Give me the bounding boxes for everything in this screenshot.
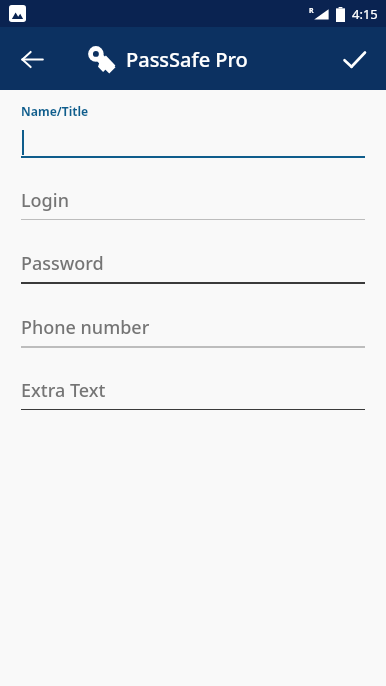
- staticText: Password: [21, 251, 104, 276]
- staticText: Login: [21, 188, 69, 213]
- button[interactable]: Extra Text: [21, 378, 365, 410]
- button[interactable]: Password: [21, 251, 365, 284]
- staticText: Name/Title: [21, 103, 89, 119]
- button[interactable]: Login: [21, 188, 365, 220]
- button[interactable]: Name/Title: [21, 103, 365, 158]
- button[interactable]: Back: [8, 35, 56, 83]
- staticText: PassSafe Pro: [126, 46, 248, 73]
- button[interactable]: Phone number: [21, 315, 365, 348]
- staticText: Extra Text: [21, 378, 106, 403]
- staticText: Phone number: [21, 315, 150, 340]
- button[interactable]: Save: [330, 35, 378, 83]
- staticText: R: [309, 6, 314, 16]
- staticText: 4:15: [352, 5, 378, 23]
